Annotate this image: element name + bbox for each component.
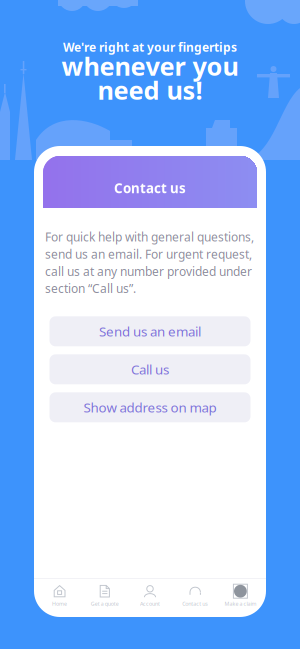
button[interactable]: Contact us <box>173 584 218 607</box>
button[interactable]: Account <box>127 584 173 607</box>
button[interactable]: Call us <box>49 354 250 384</box>
staticText: Call us <box>131 360 169 378</box>
staticText: Get a quote <box>91 600 119 607</box>
staticText: Show address on map <box>83 398 216 416</box>
staticText: We're right at your fingertips <box>63 39 237 55</box>
staticText: For quick help with general questions, s… <box>45 229 254 296</box>
button[interactable]: Send us an email <box>49 316 250 346</box>
staticText: Home <box>52 600 67 607</box>
staticText: Send us an email <box>99 322 201 340</box>
button[interactable]: Make a claim <box>218 584 263 607</box>
staticText: Make a claim <box>224 600 256 607</box>
staticText: Contact us <box>114 179 186 197</box>
staticText: whenever you <box>61 49 238 83</box>
button[interactable]: Get a quote <box>82 584 127 607</box>
staticText: Account <box>140 600 160 607</box>
staticText: need us! <box>97 73 202 107</box>
staticText: Contact us <box>182 600 208 607</box>
button[interactable]: Show address on map <box>49 392 250 422</box>
button[interactable]: Home <box>37 584 82 607</box>
